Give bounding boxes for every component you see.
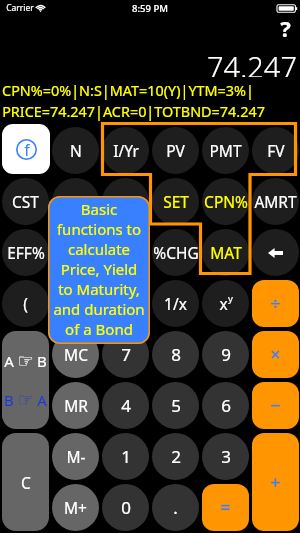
- button[interactable]: [102, 229, 149, 276]
- button[interactable]: Multiply: [252, 331, 299, 378]
- button[interactable]: MC: [52, 331, 99, 378]
- button[interactable]: I/Yr: [102, 127, 149, 174]
- staticText: CST: [12, 191, 39, 212]
- button[interactable]: 5: [152, 382, 199, 429]
- button[interactable]: 9: [202, 331, 249, 378]
- button[interactable]: MAT: [202, 229, 249, 276]
- button[interactable]: 6: [202, 382, 249, 429]
- button[interactable]: Minus: [252, 382, 299, 429]
- button[interactable]: .: [152, 484, 199, 531]
- button[interactable]: SET: [152, 178, 199, 225]
- staticText: x: [219, 293, 228, 314]
- staticText: PMT: [209, 140, 242, 161]
- button[interactable]: [52, 229, 99, 276]
- button[interactable]: Plus: [252, 433, 299, 531]
- button[interactable]: PV: [152, 127, 199, 174]
- button[interactable]: C: [2, 433, 49, 531]
- staticText: 1/x: [164, 293, 187, 314]
- staticText: B: [37, 351, 47, 371]
- button[interactable]: M-: [52, 433, 99, 480]
- button[interactable]: PMT: [202, 127, 249, 174]
- button[interactable]: [102, 178, 149, 225]
- staticText: MAT: [210, 242, 242, 263]
- staticText: C: [21, 472, 31, 493]
- staticText: A: [37, 390, 47, 410]
- staticText: f: [24, 139, 30, 160]
- staticText: PV: [166, 140, 185, 161]
- staticText: 3: [221, 445, 231, 468]
- staticText: +: [270, 470, 281, 495]
- staticText: AMRT: [254, 191, 297, 212]
- button[interactable]: CST: [2, 178, 49, 225]
- staticText: 2: [171, 445, 181, 468]
- button[interactable]: AMRT: [252, 178, 299, 225]
- staticText: −: [270, 393, 281, 418]
- staticText: ☞: [17, 350, 34, 371]
- button[interactable]: %CHG: [152, 229, 199, 276]
- staticText: CPN%: [204, 191, 248, 212]
- button[interactable]: 7: [102, 331, 149, 378]
- staticText: 8: [171, 343, 181, 366]
- button[interactable]: MR: [52, 382, 99, 429]
- staticText: 6: [221, 394, 231, 417]
- button[interactable]: 3: [202, 433, 249, 480]
- staticText: PRICE=74.247|ACR=0|TOTBND=74.247: [2, 102, 265, 122]
- staticText: %CHG: [153, 242, 199, 263]
- button[interactable]: 4: [102, 382, 149, 429]
- button[interactable]: [52, 280, 99, 327]
- button[interactable]: FV: [252, 127, 299, 174]
- staticText: =: [220, 495, 231, 520]
- staticText: MR: [64, 395, 88, 416]
- staticText: Carrier: [6, 2, 34, 14]
- staticText: 0: [121, 496, 131, 519]
- staticText: SET: [163, 191, 189, 212]
- staticText: CPN%=0%|N:S|MAT=10(Y)|YTM=3%|: [2, 81, 254, 101]
- staticText: A: [4, 351, 14, 371]
- staticText: 74.247: [207, 47, 297, 77]
- staticText: .: [173, 496, 178, 519]
- staticText: M-: [66, 446, 86, 467]
- staticText: 1: [121, 445, 131, 468]
- button[interactable]: Functions: [2, 124, 50, 174]
- button[interactable]: 1/x: [152, 280, 199, 327]
- staticText: EFF%: [7, 242, 45, 263]
- button[interactable]: Divide: [252, 280, 299, 327]
- button[interactable]: 1: [102, 433, 149, 480]
- button[interactable]: Help: [273, 13, 297, 37]
- staticText: MC: [64, 344, 88, 365]
- button[interactable]: x: [202, 280, 249, 327]
- staticText: (: [23, 293, 28, 314]
- button[interactable]: 8: [152, 331, 199, 378]
- button[interactable]: 0: [102, 484, 149, 531]
- staticText: B: [4, 390, 14, 410]
- staticText: N: [70, 140, 82, 161]
- button[interactable]: Equals: [202, 484, 249, 531]
- button[interactable]: [52, 178, 99, 225]
- staticText: M+: [64, 497, 87, 518]
- button[interactable]: M+: [52, 484, 99, 531]
- button[interactable]: Swap A and B: [2, 331, 49, 429]
- button[interactable]: [102, 280, 149, 327]
- staticText: 9: [221, 343, 231, 366]
- button[interactable]: Backspace: [252, 229, 299, 276]
- button[interactable]: EFF%: [2, 229, 49, 276]
- staticText: ÷: [270, 291, 281, 316]
- staticText: 5: [171, 394, 181, 417]
- staticText: 4: [121, 394, 131, 417]
- staticText: ?: [280, 13, 291, 37]
- button[interactable]: (: [2, 280, 49, 327]
- staticText: FV: [267, 140, 285, 161]
- staticText: Basic functions to calculate Price, Yiel…: [52, 199, 146, 341]
- staticText: ☞: [17, 389, 34, 410]
- staticText: I/Yr: [113, 140, 139, 161]
- staticText: 8:59 PM: [132, 2, 168, 15]
- button[interactable]: N: [52, 127, 99, 174]
- staticText: y: [228, 292, 233, 305]
- button[interactable]: CPN%: [202, 178, 249, 225]
- button[interactable]: 2: [152, 433, 199, 480]
- staticText: 7: [121, 343, 131, 366]
- staticText: ×: [270, 342, 281, 367]
